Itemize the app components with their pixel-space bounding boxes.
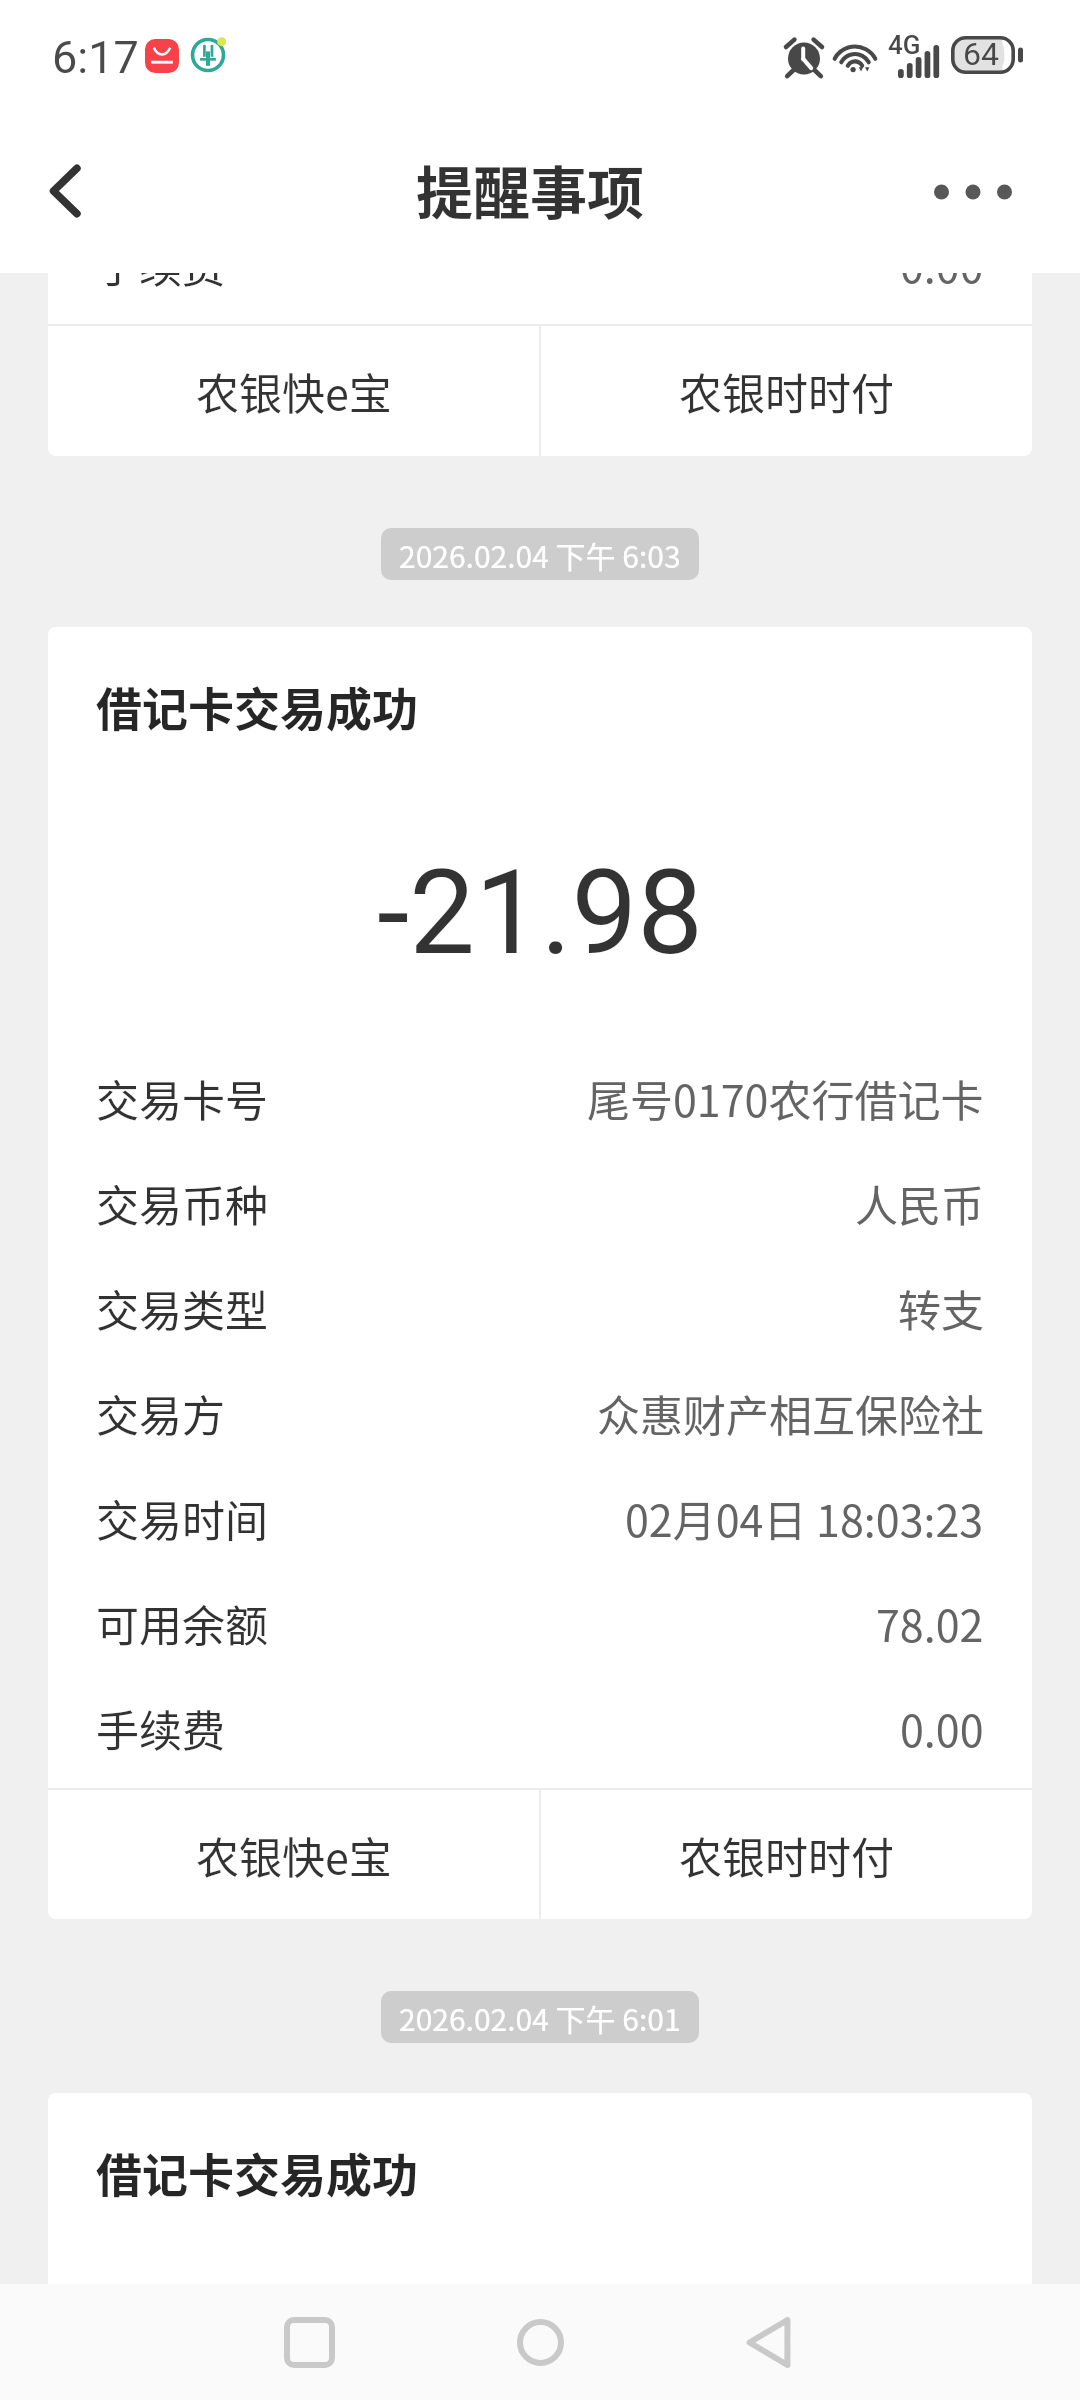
button[interactable]: 手续费: [48, 200, 1032, 456]
staticText: 64: [963, 35, 999, 73]
staticText: 交易币种: [96, 1172, 268, 1234]
staticText: 借记卡交易成功: [96, 2139, 418, 2206]
staticText: 众惠财产相互保险社: [597, 1382, 984, 1444]
staticText: 尾号0170农行借记卡: [587, 1067, 984, 1129]
staticText: 02月04日 18:03:23: [625, 1487, 984, 1549]
staticText: 交易类型: [96, 1277, 268, 1339]
button[interactable]: Home: [495, 2297, 585, 2387]
button[interactable]: 农银时时付: [541, 326, 1032, 456]
staticText: 交易卡号: [96, 1067, 268, 1129]
button[interactable]: 借记卡交易成功: [48, 2093, 1032, 2293]
staticText: 交易时间: [96, 1487, 268, 1549]
staticText: 借记卡交易成功: [96, 673, 418, 740]
staticText: 78.02: [876, 1592, 984, 1654]
staticText: 6:17: [52, 31, 139, 84]
staticText: 0.00: [900, 1697, 984, 1759]
staticText: 转支: [898, 1277, 984, 1339]
staticText: 手续费: [96, 1697, 225, 1759]
staticText: 4G: [888, 30, 921, 60]
staticText: 提醒事项: [416, 148, 644, 231]
staticText: -21.98: [48, 844, 1032, 981]
staticText: 农银时时付: [679, 360, 894, 422]
button[interactable]: Back: [723, 2297, 813, 2387]
staticText: 手续费: [96, 233, 225, 295]
button[interactable]: 农银快e宝: [48, 1790, 539, 1919]
staticText: 2026.02.04 下午 6:03: [399, 533, 681, 576]
button[interactable]: More options: [910, 148, 1035, 236]
staticText: 人民币: [855, 1172, 984, 1234]
staticText: 可用余额: [96, 1592, 268, 1654]
button[interactable]: Recents: [264, 2297, 354, 2387]
button[interactable]: 农银时时付: [541, 1790, 1032, 1919]
staticText: 农银时时付: [679, 1824, 894, 1886]
button[interactable]: 农银快e宝: [48, 326, 539, 456]
staticText: 交易方: [96, 1382, 225, 1444]
staticText: 农银快e宝: [196, 1824, 392, 1886]
staticText: 农银快e宝: [196, 360, 392, 422]
button[interactable]: Back: [20, 147, 108, 235]
staticText: 2026.02.04 下午 6:01: [399, 1996, 681, 2039]
button[interactable]: 借记卡交易成功: [48, 627, 1032, 1919]
staticText: 0.00: [900, 233, 984, 295]
